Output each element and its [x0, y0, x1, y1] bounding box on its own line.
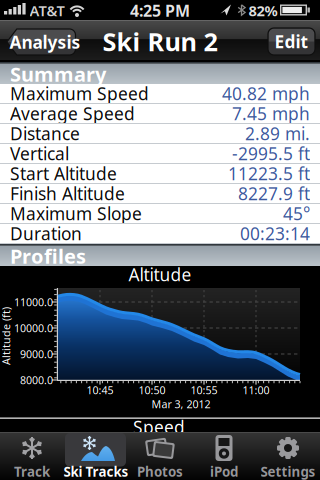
staticText: 10:50	[138, 383, 165, 397]
staticText: Duration	[10, 222, 82, 245]
button[interactable]: Settings	[0, 432, 320, 480]
staticText: 10000.0	[14, 321, 53, 335]
staticText: Altitude (ft)	[0, 329, 35, 343]
staticText: 10:55	[190, 383, 217, 397]
staticText: -2995.5 ft	[232, 142, 310, 165]
staticText: Ski Run 2	[102, 25, 217, 58]
staticText: Maximum Speed	[10, 82, 149, 105]
staticText: Start Altitude	[10, 162, 117, 185]
staticText: 8227.9 ft	[238, 182, 310, 205]
button[interactable]: Track	[0, 432, 320, 480]
staticText: Speed	[133, 415, 185, 438]
staticText: Photos	[137, 463, 183, 480]
staticText: Profiles	[10, 243, 86, 269]
staticText: Ski Tracks	[63, 463, 128, 480]
staticText: 00:23:14	[240, 222, 310, 245]
staticText: 9000.0	[20, 347, 53, 361]
staticText: Settings	[260, 463, 315, 480]
staticText: 40.82 mph	[222, 82, 310, 105]
staticText: 45°	[283, 202, 310, 225]
button[interactable]: Back	[0, 20, 320, 62]
staticText: iPod	[210, 463, 238, 480]
staticText: Vertical	[10, 142, 69, 165]
staticText: AT&T	[29, 1, 64, 20]
staticText: Average Speed	[10, 102, 135, 125]
staticText: 11:00	[242, 383, 269, 397]
staticText: 82%	[248, 1, 277, 20]
button[interactable]: Edit	[0, 20, 320, 62]
staticText: 8000.0	[20, 373, 53, 387]
staticText: Altitude	[128, 263, 191, 286]
staticText: 11223.5 ft	[228, 162, 310, 185]
button[interactable]: Photos	[0, 432, 320, 480]
staticText: Mar 3, 2012	[151, 397, 210, 411]
staticText: Analysis	[9, 30, 80, 53]
staticText: Maximum Slope	[10, 202, 142, 225]
staticText: 10:45	[86, 383, 113, 397]
staticText: 2.89 mi.	[245, 122, 310, 145]
staticText: Summary	[10, 61, 106, 87]
staticText: Track	[14, 463, 50, 480]
staticText: Edit	[274, 30, 308, 53]
staticText: Finish Altitude	[10, 182, 125, 205]
staticText: 7.45 mph	[232, 102, 310, 125]
staticText: Distance	[10, 122, 80, 145]
staticText: 4:25 PM	[130, 0, 190, 21]
button[interactable]: iPod	[0, 432, 320, 480]
button[interactable]: Ski Tracks	[0, 432, 320, 480]
staticText: 11000.0	[14, 295, 53, 309]
